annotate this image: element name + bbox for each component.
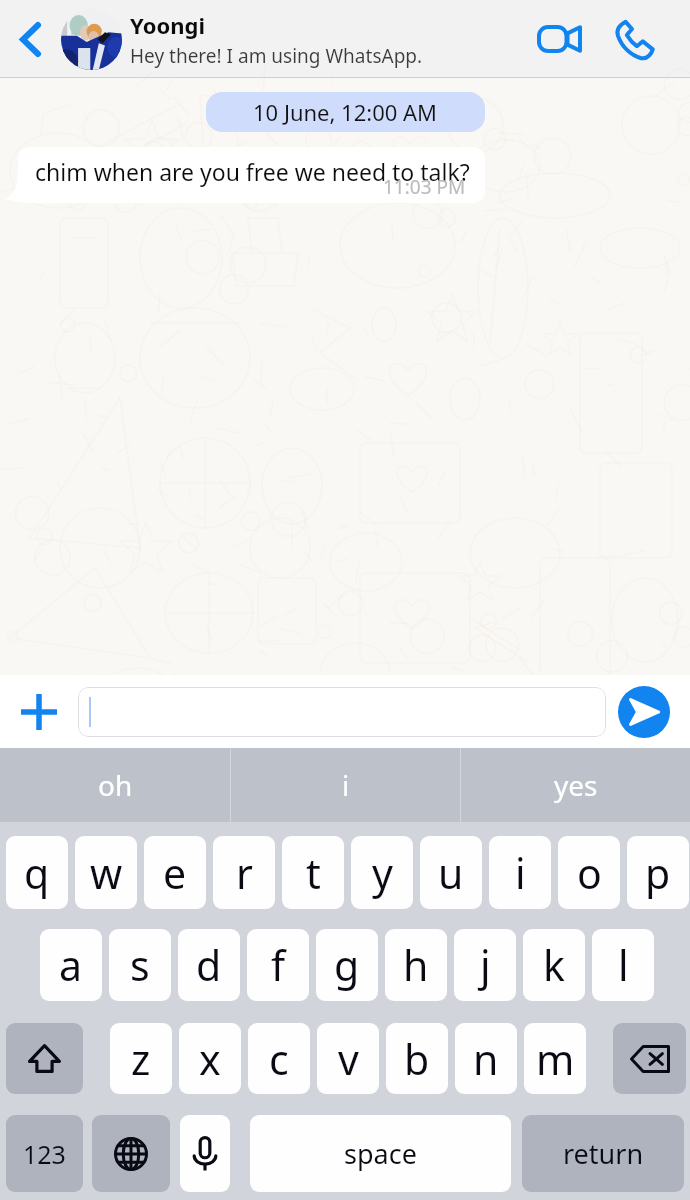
staticText: n bbox=[473, 1031, 499, 1087]
staticText: return bbox=[563, 1135, 644, 1172]
button[interactable]: z bbox=[110, 1023, 172, 1094]
button[interactable]: Shift bbox=[6, 1023, 83, 1094]
staticText: yes bbox=[554, 766, 598, 804]
button[interactable]: Voice call bbox=[598, 0, 690, 78]
staticText: b bbox=[404, 1031, 430, 1087]
button[interactable]: f bbox=[247, 929, 309, 1001]
button[interactable]: o bbox=[558, 836, 620, 909]
button[interactable]: e bbox=[144, 836, 206, 909]
button[interactable]: Send bbox=[618, 686, 670, 738]
staticText: y bbox=[372, 845, 393, 901]
button[interactable]: y bbox=[351, 836, 413, 909]
button[interactable]: g bbox=[316, 929, 378, 1001]
button[interactable]: m bbox=[524, 1023, 586, 1094]
staticText: m bbox=[536, 1031, 575, 1087]
button[interactable]: n bbox=[455, 1023, 517, 1094]
button[interactable]: Dictate bbox=[180, 1115, 230, 1192]
button[interactable]: yes bbox=[461, 748, 690, 822]
button[interactable]: p bbox=[627, 836, 689, 909]
staticText: p bbox=[645, 845, 671, 901]
staticText: Yoongi bbox=[130, 10, 205, 40]
button[interactable]: l bbox=[592, 929, 654, 1001]
staticText: x bbox=[199, 1031, 221, 1087]
staticText: oh bbox=[98, 766, 133, 804]
button[interactable]: chim when are you free we need to talk? bbox=[18, 147, 485, 203]
button[interactable]: Attach bbox=[0, 675, 78, 748]
staticText: i bbox=[342, 766, 350, 804]
staticText: 10 June, 12:00 AM bbox=[253, 97, 438, 127]
button[interactable]: v bbox=[317, 1023, 379, 1094]
staticText: 11:03 PM bbox=[383, 174, 466, 200]
button[interactable]: x bbox=[179, 1023, 241, 1094]
staticText: k bbox=[543, 937, 565, 993]
button[interactable]: u bbox=[420, 836, 482, 909]
staticText: e bbox=[163, 845, 187, 901]
staticText: o bbox=[577, 845, 602, 901]
staticText: r bbox=[236, 845, 253, 901]
staticText: g bbox=[334, 937, 360, 993]
button[interactable]: space bbox=[250, 1115, 511, 1192]
staticText: q bbox=[24, 845, 50, 901]
button[interactable]: Back bbox=[0, 0, 61, 78]
button[interactable]: oh bbox=[0, 748, 230, 822]
staticText: d bbox=[196, 937, 222, 993]
staticText: w bbox=[90, 845, 123, 901]
button[interactable]: i bbox=[489, 836, 551, 909]
staticText: h bbox=[403, 937, 429, 993]
button[interactable]: Delete bbox=[613, 1023, 686, 1094]
button[interactable]: r bbox=[213, 836, 275, 909]
button[interactable]: b bbox=[386, 1023, 448, 1094]
staticText: v bbox=[338, 1031, 359, 1087]
staticText: 123 bbox=[23, 1137, 66, 1171]
staticText: chim when are you free we need to talk? bbox=[35, 156, 470, 187]
button[interactable]: Video call bbox=[520, 0, 598, 78]
button[interactable]: Switch keyboard bbox=[92, 1115, 170, 1192]
staticText: i bbox=[515, 845, 526, 901]
button[interactable]: Numbers bbox=[6, 1115, 83, 1192]
button[interactable]: a bbox=[40, 929, 102, 1001]
button[interactable]: w bbox=[75, 836, 137, 909]
staticText: Hey there! I am using WhatsApp. bbox=[130, 43, 423, 69]
staticText: z bbox=[131, 1031, 151, 1087]
staticText: a bbox=[59, 937, 83, 993]
button[interactable] bbox=[78, 687, 606, 737]
button[interactable]: q bbox=[6, 836, 68, 909]
button[interactable]: i bbox=[231, 748, 460, 822]
staticText: space bbox=[344, 1135, 417, 1172]
button[interactable]: t bbox=[282, 836, 344, 909]
staticText: l bbox=[618, 937, 629, 993]
button[interactable]: s bbox=[109, 929, 171, 1001]
button[interactable]: d bbox=[178, 929, 240, 1001]
button[interactable]: j bbox=[454, 929, 516, 1001]
button[interactable]: h bbox=[385, 929, 447, 1001]
staticText: j bbox=[480, 937, 491, 993]
staticText: c bbox=[269, 1031, 289, 1087]
button[interactable]: c bbox=[248, 1023, 310, 1094]
staticText: s bbox=[130, 937, 150, 993]
staticText: t bbox=[306, 845, 321, 901]
staticText: u bbox=[438, 845, 464, 901]
button[interactable]: k bbox=[523, 929, 585, 1001]
button[interactable]: return bbox=[522, 1115, 684, 1192]
staticText: f bbox=[271, 937, 286, 993]
